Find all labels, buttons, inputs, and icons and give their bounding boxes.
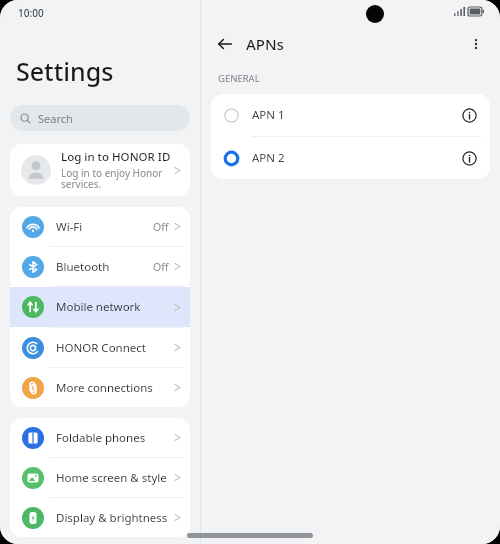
staticText: APNs bbox=[246, 34, 461, 54]
button[interactable]: Search bbox=[10, 105, 190, 131]
button[interactable]: Select APN 2 bbox=[219, 146, 243, 170]
staticText: Wi-Fi bbox=[56, 219, 153, 235]
staticText: Mobile network bbox=[56, 299, 174, 315]
button[interactable]: Select APN 1 bbox=[219, 103, 243, 127]
staticText: More connections bbox=[56, 380, 174, 396]
button[interactable]: Mobile network bbox=[10, 287, 190, 327]
button[interactable]: Display & brightness bbox=[10, 498, 190, 537]
staticText: GENERAL bbox=[218, 72, 260, 85]
button[interactable]: Select APN 1 bbox=[211, 94, 490, 136]
button[interactable]: Back bbox=[210, 29, 240, 59]
staticText: HONOR Connect bbox=[56, 340, 174, 356]
staticText: Home screen & style bbox=[56, 470, 174, 486]
staticText: APN 2 bbox=[252, 150, 456, 166]
button[interactable]: More connections bbox=[10, 368, 190, 407]
button[interactable]: More options bbox=[461, 29, 491, 59]
staticText: Foldable phones bbox=[56, 430, 174, 446]
staticText: APN 1 bbox=[252, 107, 456, 123]
button[interactable]: Select APN 2 bbox=[211, 137, 490, 179]
staticText: Search bbox=[38, 111, 73, 126]
button[interactable]: Bluetooth bbox=[10, 247, 190, 286]
button[interactable]: Home screen & style bbox=[10, 458, 190, 497]
button[interactable]: Log in to HONOR ID bbox=[10, 144, 190, 196]
button[interactable]: HONOR Connect bbox=[10, 328, 190, 367]
staticText: 10:00 bbox=[18, 6, 44, 20]
button[interactable]: Foldable phones bbox=[10, 418, 190, 457]
staticText: Display & brightness bbox=[56, 510, 174, 526]
button[interactable]: APN 1 details bbox=[456, 102, 482, 128]
button[interactable]: APN 2 details bbox=[456, 145, 482, 171]
staticText: Log in to HONOR ID bbox=[61, 149, 171, 165]
staticText: Off bbox=[153, 220, 169, 234]
staticText: Log in to enjoy Honor services. bbox=[61, 166, 174, 191]
button[interactable]: Wi-Fi bbox=[10, 207, 190, 246]
staticText: Off bbox=[153, 260, 169, 274]
staticText: Bluetooth bbox=[56, 259, 153, 275]
staticText: Settings bbox=[16, 54, 114, 88]
